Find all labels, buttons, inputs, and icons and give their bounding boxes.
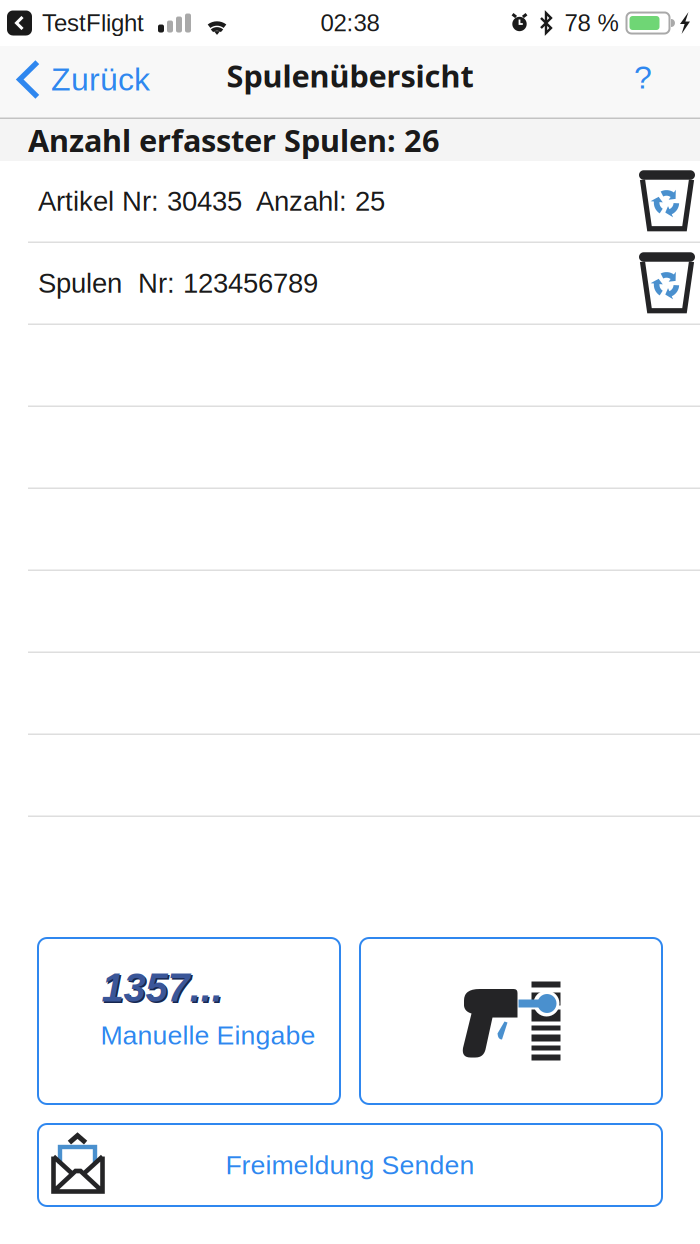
button[interactable]: Eintrag löschen [639, 161, 700, 241]
staticText: Spulen Nr: 123456789 [38, 268, 318, 299]
staticText: ? [634, 60, 652, 95]
staticText: Spulenübersicht [226, 55, 473, 96]
staticText: 1357... [101, 965, 222, 1010]
staticText: TestFlight [42, 10, 144, 36]
staticText: 1357... [103, 967, 224, 1011]
staticText: Anzahl erfasster Spulen: 26 [28, 119, 440, 161]
button[interactable]: Zurück [0, 47, 162, 111]
button[interactable]: Barcode scannen [360, 938, 662, 1104]
staticText: 02:38 [320, 10, 379, 36]
button[interactable]: ? [610, 45, 700, 109]
staticText: 78 % [564, 10, 618, 36]
button[interactable]: Freimeldung Senden [38, 1124, 662, 1206]
staticText: Freimeldung Senden [225, 1150, 474, 1180]
staticText: Artikel Nr: 30435 Anzahl: 25 [38, 186, 385, 217]
button[interactable]: Eintrag löschen [639, 243, 700, 323]
staticText: Manuelle Eingabe [100, 1020, 315, 1050]
staticText: Zurück [51, 62, 150, 97]
button[interactable]: 1357... [38, 938, 340, 1104]
